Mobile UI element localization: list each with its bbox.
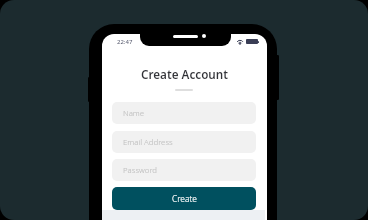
staticText: Create (172, 193, 197, 204)
staticText: Name (123, 108, 145, 119)
staticText: Create Account (102, 66, 267, 82)
button[interactable]: Name (112, 102, 256, 124)
staticText: Email Address (123, 137, 173, 148)
button[interactable]: Create (112, 187, 256, 210)
button[interactable]: Password (112, 159, 256, 181)
other: Wi-Fi signal (237, 39, 243, 44)
staticText: Password (123, 165, 157, 176)
button[interactable]: Email Address (112, 131, 256, 153)
staticText: 22:47 (117, 38, 133, 46)
other: Battery (246, 39, 258, 44)
